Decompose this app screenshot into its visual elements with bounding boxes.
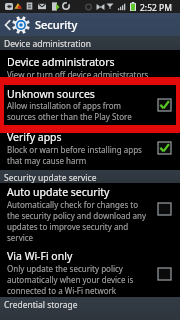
button[interactable]: Unknown sources checkbox [158, 99, 171, 111]
staticText: Only update the security policy [7, 263, 123, 274]
button[interactable]: Navigate up to Security [0, 13, 180, 36]
staticText: Via Wi-Fi only [7, 249, 73, 263]
staticText: Block or warn before installing apps [7, 144, 142, 155]
staticText: the security policy and download any [7, 210, 147, 221]
staticText: Device administrators [7, 55, 115, 69]
button[interactable]: Unknown sources [0, 81, 180, 129]
staticText: Security [35, 17, 78, 32]
staticText: automatically when your device is [7, 274, 134, 285]
staticText: that may cause harm [7, 155, 87, 166]
staticText: Credential storage [4, 299, 78, 311]
staticText: Allow installation of apps from [7, 100, 122, 111]
staticText: Unknown sources [7, 87, 95, 101]
staticText: Security update service [4, 172, 97, 183]
staticText: service [7, 232, 34, 243]
staticText: sources other than the Play Store [7, 111, 132, 122]
button[interactable]: Verify apps checkbox [158, 142, 171, 154]
staticText: connected to a Wi-Fi network [7, 285, 117, 296]
button[interactable]: Device administrators [0, 50, 180, 81]
staticText: Auto update security [7, 185, 110, 199]
staticText: updates to improve security and [7, 221, 129, 232]
staticText: View or turn off device administrators [7, 69, 149, 80]
button[interactable]: Auto update security checkbox [158, 203, 171, 215]
button[interactable]: Via Wi-Fi only [0, 244, 180, 297]
button[interactable]: Verify apps [0, 129, 180, 170]
staticText: Automatically check for changes to [7, 199, 139, 210]
staticText: 2:52 PM [140, 2, 172, 14]
button[interactable]: Via Wi-Fi only checkbox [158, 268, 171, 280]
button[interactable]: Auto update security [0, 183, 180, 244]
staticText: Device administration [4, 38, 91, 50]
staticText: Verify apps [7, 130, 62, 144]
